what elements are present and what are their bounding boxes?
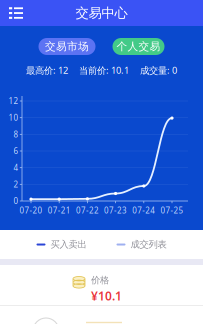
staticText: 成交列表 [130, 239, 166, 250]
button[interactable]: Menu [0, 0, 32, 26]
staticText: 07-23 [104, 205, 127, 216]
button[interactable]: 交易市场 [38, 38, 95, 55]
staticText: 交易中心 [75, 5, 127, 21]
staticText: 07-20 [19, 205, 42, 216]
staticText: 07-22 [76, 205, 99, 216]
staticText: 最高价: 12 [26, 64, 68, 76]
staticText: 成交量: 0 [140, 64, 177, 76]
staticText: 当前价: 10.1 [79, 64, 129, 76]
staticText: 07-25 [160, 205, 183, 216]
staticText: 交易市场 [45, 40, 89, 53]
staticText: 10 [8, 112, 18, 123]
staticText: ¥10.1 [91, 288, 122, 304]
staticText: 8 [13, 129, 18, 140]
staticText: 0 [13, 196, 18, 206]
staticText: 4 [13, 162, 18, 173]
staticText: 个人交易 [116, 40, 160, 53]
staticText: 07-24 [132, 205, 155, 216]
staticText: 2 [13, 179, 18, 190]
staticText: 6 [13, 146, 18, 156]
button[interactable]: 个人交易 [112, 38, 164, 55]
staticText: 价格 [91, 274, 109, 286]
staticText: 12 [8, 96, 18, 106]
staticText: 买入卖出 [50, 239, 86, 250]
staticText: 07-21 [48, 205, 71, 216]
